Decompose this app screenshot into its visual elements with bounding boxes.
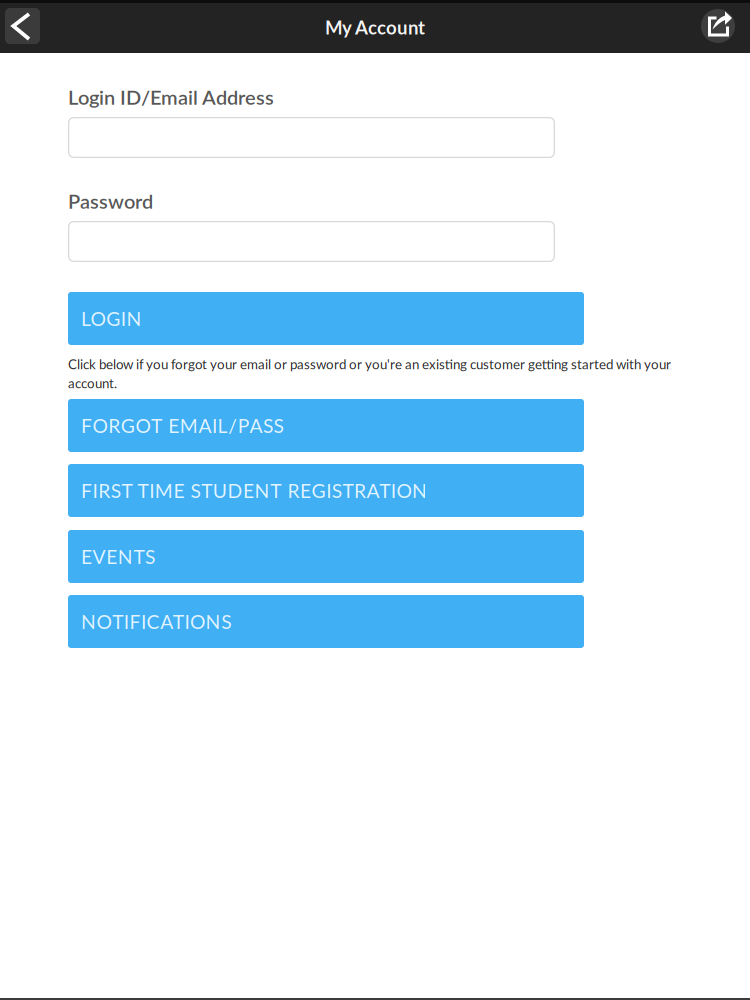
staticText: Click below if you forgot your email or …	[68, 356, 671, 391]
button[interactable]: Back	[5, 8, 40, 44]
staticText: FIRST TIME STUDENT REGISTRATION	[81, 479, 427, 502]
staticText: LOGIN	[81, 307, 141, 330]
button[interactable]: NOTIFICATIONS	[68, 595, 584, 648]
button[interactable]: FIRST TIME STUDENT REGISTRATION	[68, 464, 584, 517]
staticText: My Account	[325, 16, 425, 38]
button[interactable]: LOGIN	[68, 292, 584, 345]
button[interactable]: EVENTS	[68, 530, 584, 583]
staticText: NOTIFICATIONS	[81, 610, 231, 633]
staticText: EVENTS	[81, 545, 155, 568]
button[interactable]: Share	[701, 9, 735, 43]
staticText: Password	[68, 189, 153, 213]
button[interactable]: FORGOT EMAIL/PASS	[68, 399, 584, 452]
staticText: FORGOT EMAIL/PASS	[81, 414, 284, 437]
staticText: Login ID/Email Address	[68, 85, 274, 109]
